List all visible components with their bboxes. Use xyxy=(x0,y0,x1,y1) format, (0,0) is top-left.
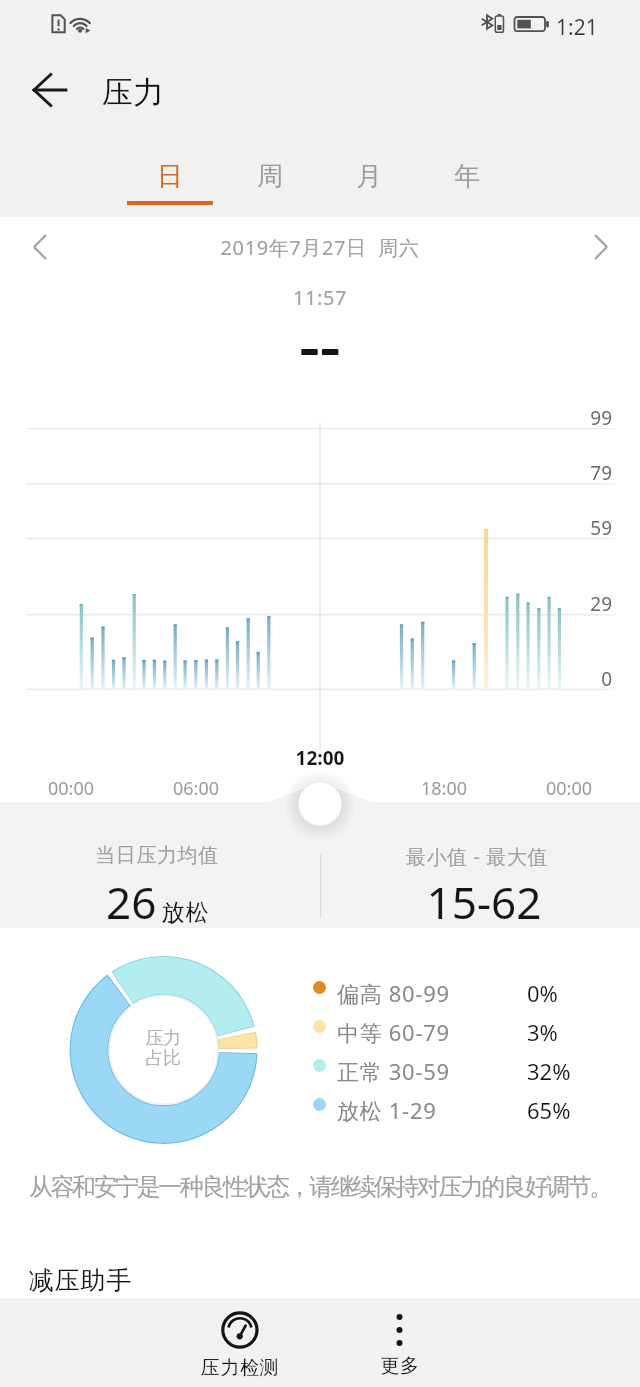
staticText: 12:00 xyxy=(270,745,370,771)
staticText: 月 xyxy=(319,160,419,200)
staticText: 99 xyxy=(512,405,612,433)
staticText: 00:00 xyxy=(519,776,619,802)
button[interactable]: Back xyxy=(16,58,84,124)
staticText: 中等 60-79 xyxy=(337,1017,450,1047)
staticText: 29 xyxy=(512,591,612,619)
staticText: 放松 1-29 xyxy=(337,1095,437,1125)
staticText: 15-62 xyxy=(364,872,604,922)
staticText: 放松 xyxy=(161,898,209,927)
staticText: 最小值 - 最大值 xyxy=(357,843,597,873)
staticText: 占比 xyxy=(101,1047,225,1071)
button[interactable]: Previous day xyxy=(18,225,62,269)
staticText: 26 xyxy=(106,872,157,932)
button[interactable]: 日 xyxy=(120,148,220,216)
staticText: 压力 xyxy=(101,1027,225,1051)
button[interactable]: 偏高 80-99 xyxy=(305,968,585,1007)
staticText: 00:00 xyxy=(21,776,121,802)
staticText: 日 xyxy=(120,160,220,200)
staticText: 压力检测 xyxy=(160,1356,320,1386)
button[interactable]: 放松 1-29 xyxy=(305,1085,585,1124)
staticText: 79 xyxy=(512,460,612,488)
staticText: 正常 30-59 xyxy=(337,1056,450,1086)
staticText: 周 xyxy=(220,160,320,200)
staticText: 从容和安宁是一种良性状态，请继续保持对压力的良好调节。 xyxy=(29,1172,640,1212)
button[interactable]: 年 xyxy=(417,148,517,216)
staticText: 65% xyxy=(527,1095,571,1125)
staticText: 3% xyxy=(527,1017,558,1047)
staticText: 减压助手 xyxy=(28,1265,132,1296)
button[interactable]: 正常 30-59 xyxy=(305,1046,585,1085)
staticText: 更多 xyxy=(320,1354,480,1384)
button[interactable]: 月 xyxy=(319,148,419,216)
staticText: 0% xyxy=(527,978,558,1008)
button[interactable]: 压力检测 xyxy=(160,1298,320,1387)
staticText: 年 xyxy=(417,160,517,200)
staticText: 1:21 xyxy=(556,13,598,42)
button[interactable]: Next day xyxy=(579,225,623,269)
button[interactable]: 周 xyxy=(220,148,320,216)
button[interactable]: 中等 60-79 xyxy=(305,1007,585,1046)
staticText: 0 xyxy=(512,666,612,694)
staticText: 18:00 xyxy=(394,776,494,802)
staticText: 06:00 xyxy=(146,776,246,802)
staticText: 压力 xyxy=(102,73,164,112)
staticText: 32% xyxy=(527,1056,571,1086)
button[interactable]: 更多 xyxy=(320,1298,480,1387)
staticText: 偏高 80-99 xyxy=(337,978,450,1008)
staticText: 当日压力均值 xyxy=(37,843,277,873)
staticText: 11:57 xyxy=(0,284,640,316)
staticText: 2019年7月27日 周六 xyxy=(0,234,640,268)
staticText: 59 xyxy=(512,515,612,543)
